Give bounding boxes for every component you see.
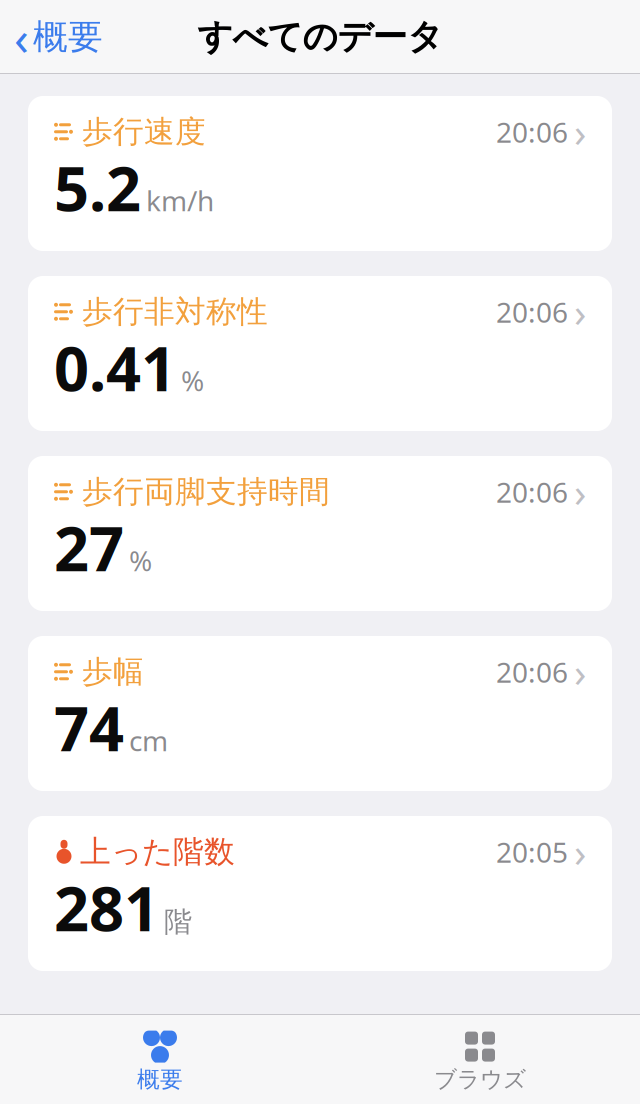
staticText: ‹ [14,5,29,69]
button[interactable]: 上った階数 [28,816,612,971]
staticText: cm [129,722,168,759]
staticText: 歩行非対称性 [82,293,268,331]
staticText: 概要 [137,1066,183,1093]
staticText: 20:06 [496,653,568,690]
button[interactable]: 歩行非対称性 [28,276,612,431]
staticText: 歩行速度 [82,113,206,151]
button[interactable]: 歩行速度 [28,96,612,251]
staticText: ブラウズ [434,1066,526,1093]
staticText: 27 [54,507,124,588]
staticText: › [574,645,586,698]
staticText: km/h [146,182,214,219]
staticText: 上った階数 [80,833,235,871]
staticText: 0.41 [54,327,176,408]
staticText: › [574,825,586,878]
staticText: すべてのデータ [197,16,442,58]
staticText: 歩行両脚支持時間 [82,473,330,511]
staticText: % [129,542,152,579]
staticText: 281 [54,867,159,948]
button[interactable]: 歩行両脚支持時間 [28,456,612,611]
staticText: 74 [54,687,124,768]
staticText: 20:06 [496,473,568,510]
staticText: › [574,285,586,338]
button[interactable]: ‹ [0,0,117,77]
staticText: 20:06 [496,293,568,330]
staticText: 20:06 [496,113,568,150]
staticText: › [574,105,586,158]
button[interactable]: ブラウズ [320,1018,640,1104]
button[interactable]: 歩幅 [28,636,612,791]
staticText: 5.2 [54,147,141,228]
staticText: › [574,465,586,518]
staticText: 歩幅 [82,653,144,691]
button[interactable]: 概要 [0,1018,320,1104]
staticText: % [181,362,204,399]
staticText: 階 [164,905,192,939]
staticText: 20:05 [496,833,568,870]
staticText: 概要 [33,16,103,58]
